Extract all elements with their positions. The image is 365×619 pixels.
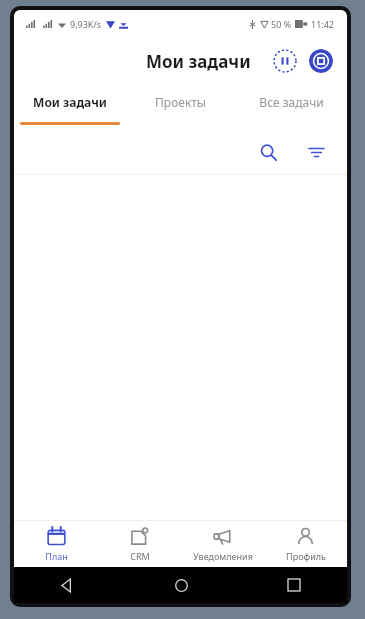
button[interactable]: План bbox=[14, 521, 98, 567]
button[interactable]: Уведомления bbox=[181, 521, 264, 567]
button[interactable]: Recent apps bbox=[281, 572, 307, 598]
button[interactable]: Проекты bbox=[125, 84, 236, 130]
button[interactable]: Home bbox=[168, 572, 194, 598]
button[interactable]: Stop timer bbox=[309, 49, 333, 73]
button[interactable]: Все задачи bbox=[236, 84, 347, 130]
staticText: Профиль bbox=[286, 550, 326, 562]
button[interactable]: Search bbox=[253, 137, 283, 167]
button[interactable]: Pause timer bbox=[273, 49, 297, 73]
button[interactable]: CRM bbox=[98, 521, 181, 567]
staticText: CRM bbox=[130, 550, 150, 562]
button[interactable]: Мои задачи bbox=[14, 84, 125, 130]
staticText: План bbox=[45, 550, 68, 562]
staticText: Уведомления bbox=[193, 550, 253, 562]
staticText: Мои задачи bbox=[146, 50, 251, 73]
staticText: 9,93K/s bbox=[70, 18, 102, 30]
staticText: Проекты bbox=[155, 94, 206, 110]
staticText: Все задачи bbox=[259, 94, 324, 110]
button[interactable]: Back bbox=[54, 572, 80, 598]
button[interactable]: Filter bbox=[301, 137, 331, 167]
staticText: Мои задачи bbox=[33, 94, 107, 110]
button[interactable]: Профиль bbox=[264, 521, 347, 567]
staticText: 50 % bbox=[271, 18, 292, 30]
staticText: 11:42 bbox=[311, 18, 335, 30]
